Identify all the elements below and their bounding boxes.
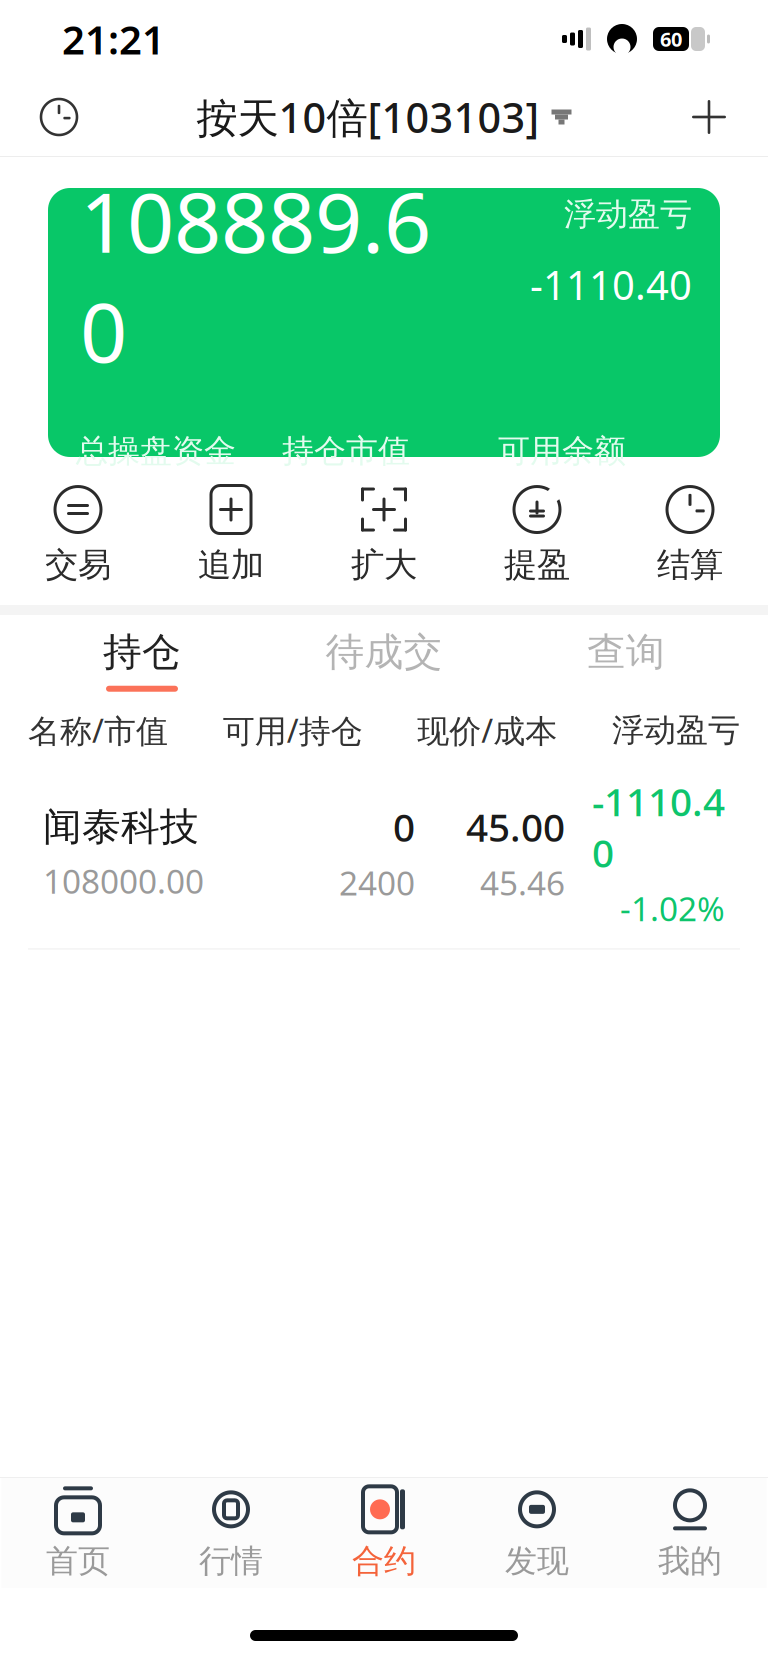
staticText: 110000 (76, 481, 202, 528)
staticText: 交易 (45, 544, 111, 585)
staticText: 名称/市值 (28, 709, 168, 751)
staticText: 108889.60 (80, 166, 431, 385)
staticText: 浮动盈亏 (612, 711, 740, 750)
staticText: 现价/成本 (417, 709, 557, 751)
button[interactable]: 扩大 (307, 489, 460, 581)
staticText: 可用/持仓 (223, 709, 363, 751)
staticText: 21:21 (62, 12, 165, 65)
staticText: 45.46 (480, 860, 565, 905)
staticText: 追加 (198, 544, 264, 585)
button[interactable]: 闻泰科技 (0, 761, 768, 949)
button[interactable]: 首页 (1, 1478, 154, 1588)
button[interactable]: 查询 (505, 610, 747, 696)
staticText: > (676, 470, 696, 516)
button[interactable]: 合约总值 (48, 188, 720, 457)
button[interactable]: 结算 (613, 489, 766, 581)
staticText: 持仓市值 (282, 431, 410, 471)
button[interactable]: 行情 (154, 1478, 307, 1588)
staticText: 108000.00 (282, 481, 460, 528)
staticText: -1110.40 (592, 775, 725, 878)
staticText: 查询 (587, 628, 665, 676)
button[interactable]: 合约 (307, 1478, 460, 1588)
staticText: 合约总值 (80, 120, 208, 160)
button[interactable]: 提盈 (460, 489, 613, 581)
staticText: 提盈 (504, 544, 570, 585)
staticText: 60 (660, 26, 682, 52)
staticText: 浮动盈亏 (564, 195, 692, 234)
button[interactable]: 持仓 (21, 610, 263, 696)
staticText: 0 (393, 801, 415, 852)
button[interactable]: 我的 (613, 1478, 766, 1588)
staticText: -1.02% (620, 886, 725, 930)
staticText: 889.60 (498, 481, 613, 528)
staticText: 待成交 (325, 628, 442, 676)
staticText: 闻泰科技 (43, 803, 199, 851)
staticText: 可用余额 (498, 431, 626, 471)
staticText: 我的 (658, 1541, 722, 1581)
staticText: 扩大 (351, 544, 417, 585)
staticText: 发现 (505, 1541, 569, 1581)
button[interactable]: 按天10倍[103103] (196, 86, 571, 148)
button[interactable]: 待成交 (263, 610, 505, 696)
staticText: 合约 (352, 1541, 416, 1581)
staticText: 结算 (657, 544, 723, 585)
staticText: 总操盘资金 (76, 431, 236, 471)
staticText: 45.00 (466, 801, 565, 852)
staticText: 按天10倍[103103] (196, 90, 539, 144)
button[interactable]: 发现 (460, 1478, 613, 1588)
button[interactable]: History (24, 86, 94, 148)
staticText: 首页 (46, 1541, 110, 1581)
staticText: 108000.00 (43, 859, 204, 903)
staticText: 2400 (339, 860, 415, 905)
staticText: -1110.40 (530, 258, 692, 311)
button[interactable]: Add (674, 86, 744, 148)
staticText: 持仓 (103, 628, 181, 676)
button[interactable]: 追加 (154, 489, 307, 581)
button[interactable]: 交易 (1, 489, 154, 581)
staticText: 行情 (199, 1541, 263, 1581)
